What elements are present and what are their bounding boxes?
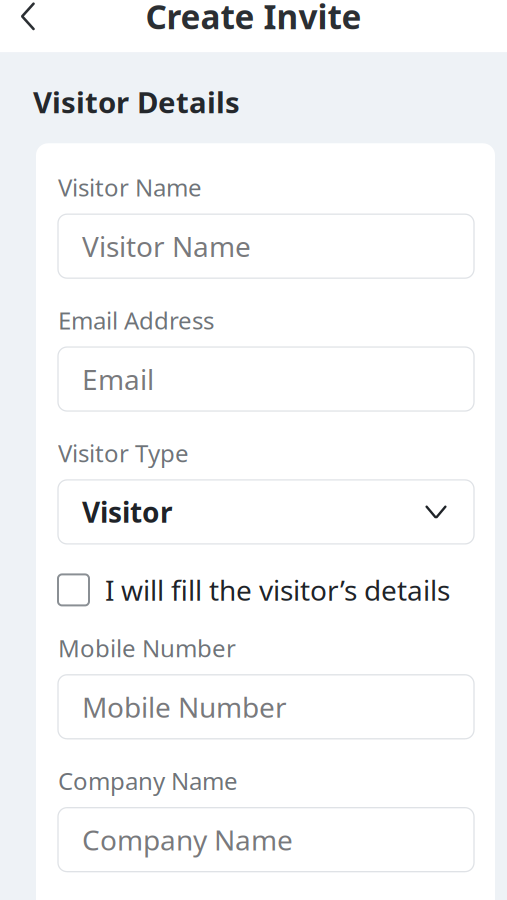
button[interactable]: Back xyxy=(0,0,56,52)
staticText: Visitor Details xyxy=(33,82,240,121)
staticText: Create Invite xyxy=(145,0,361,38)
staticText: I will fill the visitor’s details xyxy=(105,571,450,608)
button[interactable]: Company Name xyxy=(58,808,474,872)
staticText: Visitor Name xyxy=(82,228,251,265)
staticText: Company Name xyxy=(82,821,293,858)
staticText: Visitor Type xyxy=(58,437,189,469)
button[interactable]: Visitor xyxy=(58,480,474,544)
staticText: Email Address xyxy=(58,304,214,336)
staticText: Visitor xyxy=(82,493,173,530)
staticText: Email xyxy=(82,360,154,398)
staticText: Mobile Number xyxy=(58,632,236,664)
button[interactable]: Visitor Name xyxy=(58,214,474,278)
button[interactable]: Email xyxy=(58,347,474,411)
button[interactable]: I will fill the visitor’s details xyxy=(58,570,474,610)
staticText: Visitor Name xyxy=(58,171,202,203)
staticText: Mobile Number xyxy=(82,688,287,725)
button[interactable]: Mobile Number xyxy=(58,675,474,739)
staticText: Company Name xyxy=(58,765,238,797)
